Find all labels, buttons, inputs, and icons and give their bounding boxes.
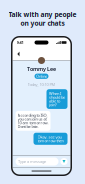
staticText: Today, 10:10 PM [27, 82, 55, 87]
staticText: When I should be able to join? [49, 91, 65, 107]
staticText: Tommy Lee [27, 65, 56, 73]
staticText: According to ISO, you can join us at 10 … [17, 112, 48, 129]
staticText: Okay, see you tomorrow then [37, 134, 63, 143]
button[interactable]: Back [14, 49, 22, 59]
staticText: Type a message [18, 159, 46, 164]
staticText: Talk with any people [8, 10, 76, 19]
button[interactable]: Send [60, 158, 67, 165]
button[interactable]: Type a message [15, 157, 58, 165]
staticText: 9:41 [16, 40, 23, 45]
staticText: on your chats [20, 19, 64, 28]
staticText: Online [36, 74, 47, 79]
